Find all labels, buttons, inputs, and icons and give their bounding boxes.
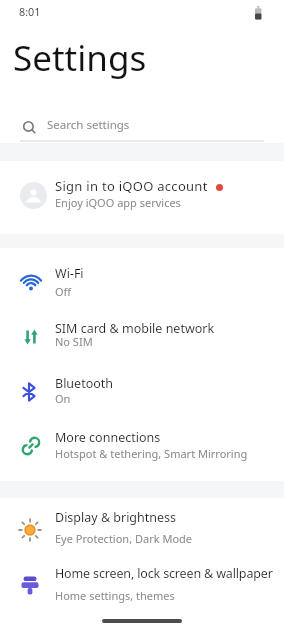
staticText: No SIM bbox=[55, 334, 93, 349]
staticText: Off bbox=[55, 284, 72, 299]
staticText: 8:01 bbox=[19, 4, 41, 19]
staticText: Eye Protection, Dark Mode bbox=[55, 531, 193, 546]
staticText: Home settings, themes bbox=[55, 588, 175, 603]
staticText: Wi-Fi bbox=[55, 265, 84, 282]
button[interactable]: Home screen, lock screen & wallpaper bbox=[0, 554, 284, 611]
staticText: Sign in to iQOO account bbox=[55, 177, 208, 195]
staticText: On bbox=[55, 391, 71, 406]
staticText: Search settings bbox=[47, 117, 130, 133]
staticText: Settings bbox=[13, 34, 147, 82]
button[interactable]: Wi-Fi bbox=[0, 251, 284, 306]
button[interactable]: More connections bbox=[0, 416, 284, 471]
staticText: Home screen, lock screen & wallpaper bbox=[55, 565, 273, 582]
staticText: Display & brightness bbox=[55, 509, 177, 526]
button[interactable]: Display & brightness bbox=[0, 498, 284, 554]
staticText: Enjoy iQOO app services bbox=[55, 195, 181, 210]
staticText: More connections bbox=[55, 429, 161, 446]
button[interactable]: SIM card & mobile network bbox=[0, 306, 284, 361]
staticText: Hotspot & tethering, Smart Mirroring bbox=[55, 446, 248, 461]
staticText: SIM card & mobile network bbox=[55, 320, 215, 337]
staticText: Bluetooth bbox=[55, 375, 114, 392]
button[interactable]: Sign in to iQOO account bbox=[0, 161, 284, 234]
button[interactable]: Search settings bbox=[0, 108, 284, 145]
button[interactable]: Bluetooth bbox=[0, 361, 284, 416]
